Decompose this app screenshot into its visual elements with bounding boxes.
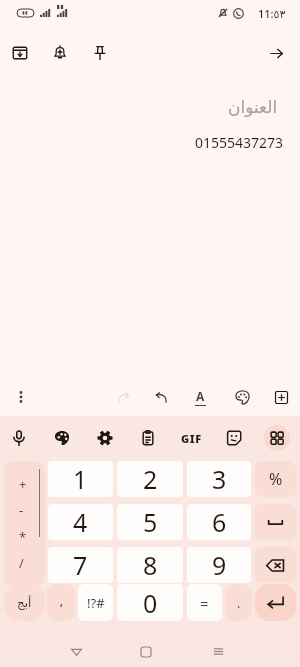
button[interactable]: Arabic letters — [4, 584, 45, 621]
staticText: !?# — [87, 594, 105, 612]
button[interactable]: Background colour — [229, 384, 255, 410]
staticText: * — [19, 528, 27, 546]
button[interactable]: 3 — [187, 461, 251, 497]
staticText: % — [269, 468, 283, 490]
staticText: العنوان — [228, 97, 278, 117]
button[interactable]: Comma — [47, 584, 75, 621]
button[interactable]: Theme — [49, 425, 75, 451]
button[interactable]: Undo — [148, 384, 174, 410]
staticText: 3 — [212, 462, 227, 496]
staticText: / — [19, 554, 24, 572]
button[interactable]: 8 — [117, 547, 183, 583]
button[interactable]: Archive — [5, 38, 35, 68]
button[interactable]: 4 — [48, 504, 113, 540]
staticText: أبج — [17, 596, 32, 610]
button[interactable]: Text formatting — [187, 384, 213, 410]
button[interactable]: Equals — [187, 584, 222, 621]
staticText: 2 — [143, 462, 158, 496]
button[interactable]: Pin — [85, 38, 115, 68]
button[interactable]: Operators — [4, 461, 45, 586]
button[interactable]: Add — [268, 384, 294, 410]
staticText: 11:٥٣ — [258, 6, 286, 21]
button[interactable]: Recent apps — [198, 636, 238, 667]
button[interactable]: 2 — [117, 461, 183, 497]
button[interactable]: Symbols — [78, 584, 113, 621]
staticText: A — [196, 388, 205, 404]
button[interactable]: More options — [8, 384, 34, 410]
staticText: 0 — [143, 586, 158, 620]
button[interactable]: GIF — [178, 425, 204, 451]
staticText: + — [19, 475, 27, 493]
staticText: - — [19, 501, 24, 519]
button[interactable]: Add reminder — [45, 38, 75, 68]
button[interactable]: Home — [126, 636, 166, 667]
button[interactable]: Clipboard — [135, 425, 161, 451]
button[interactable]: More apps — [264, 425, 290, 451]
button[interactable]: Space — [255, 504, 296, 540]
staticText: GIF — [181, 431, 202, 446]
button[interactable]: 0 — [117, 584, 183, 621]
staticText: 1 — [73, 462, 88, 496]
staticText: = — [200, 593, 209, 613]
button[interactable]: Stickers — [221, 425, 247, 451]
staticText: 01555437273 — [195, 133, 284, 152]
staticText: 4 — [73, 505, 88, 539]
button[interactable]: Percent — [255, 461, 296, 497]
button[interactable]: 1 — [48, 461, 113, 497]
button[interactable]: 6 — [187, 504, 251, 540]
button[interactable]: Voice typing — [6, 425, 32, 451]
button[interactable]: Redo — [110, 384, 136, 410]
button[interactable]: Enter — [255, 584, 296, 621]
button[interactable]: Settings — [92, 425, 118, 451]
staticText: . — [237, 594, 241, 612]
staticText: 7 — [73, 548, 88, 582]
button[interactable]: 7 — [48, 547, 113, 583]
button[interactable]: 5 — [117, 504, 183, 540]
button[interactable]: Back — [56, 636, 96, 667]
staticText: 8 — [143, 548, 158, 582]
staticText: 6 — [212, 505, 227, 539]
button[interactable]: Backspace — [255, 547, 296, 583]
staticText: 9 — [212, 548, 227, 582]
button[interactable]: 9 — [187, 547, 251, 583]
button[interactable]: Back — [261, 38, 291, 68]
staticText: 5 — [143, 505, 158, 539]
button[interactable]: Period — [225, 584, 252, 621]
staticText: ، — [59, 595, 64, 610]
